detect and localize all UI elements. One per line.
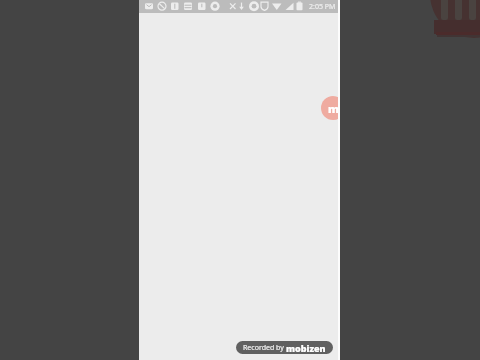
staticText: 2:05 PM — [309, 2, 336, 12]
button[interactable]: Mobizen recorder — [321, 96, 339, 120]
staticText: Recorded by — [243, 343, 286, 353]
staticText: mobizen — [286, 342, 326, 354]
button[interactable]: Recorded by — [236, 341, 333, 354]
staticText: m — [328, 101, 339, 116]
